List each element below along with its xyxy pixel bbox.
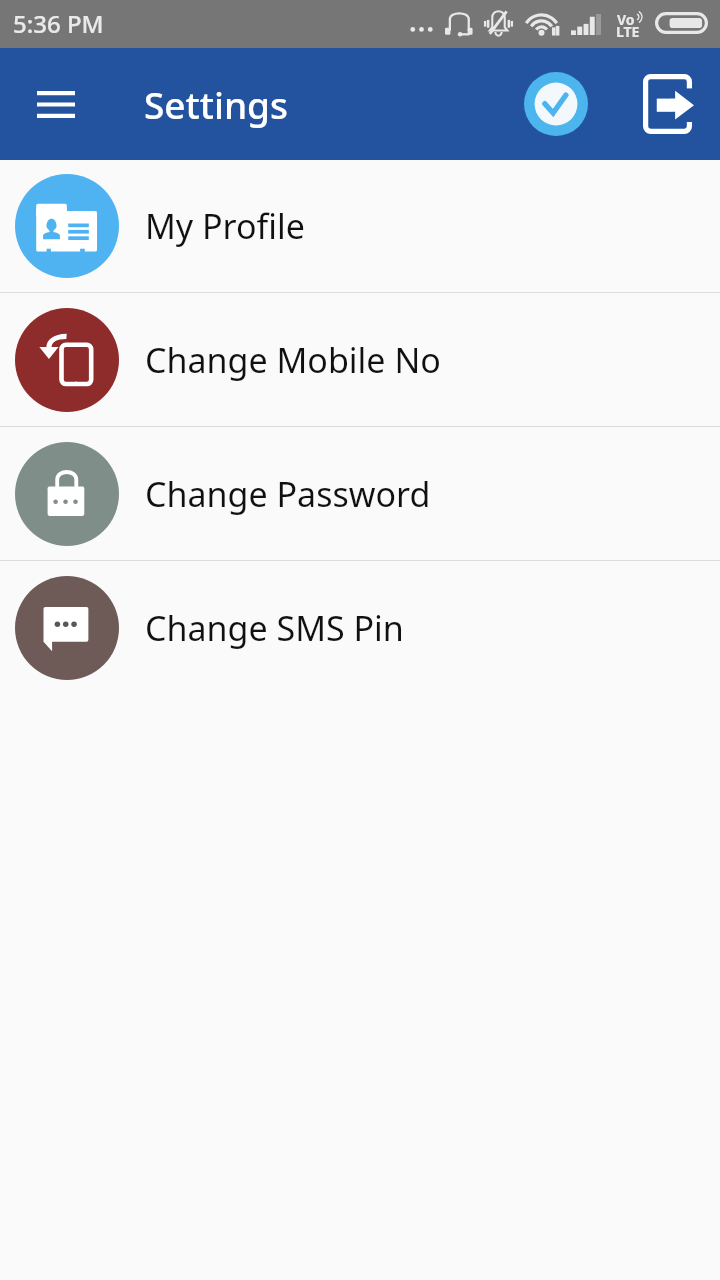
button[interactable]: Open navigation drawer xyxy=(0,48,112,160)
button[interactable]: My Profile xyxy=(0,160,720,292)
staticText: Change Mobile No xyxy=(145,337,441,383)
staticText: Settings xyxy=(144,79,289,129)
staticText: My Profile xyxy=(145,203,305,249)
staticText: 5:36 PM xyxy=(13,7,104,40)
button[interactable]: Confirm xyxy=(508,48,604,160)
button[interactable]: Change Password xyxy=(0,427,720,560)
staticText: Change SMS Pin xyxy=(145,605,404,651)
staticText: LTE xyxy=(616,22,640,38)
staticText: Vo xyxy=(617,10,635,29)
button[interactable]: Logout xyxy=(623,48,713,160)
button[interactable]: Change SMS Pin xyxy=(0,561,720,694)
button[interactable]: Change Mobile No xyxy=(0,293,720,426)
staticText: Change Password xyxy=(145,471,431,517)
